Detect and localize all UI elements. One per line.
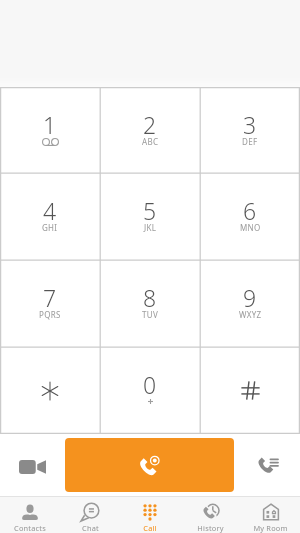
button[interactable]: History xyxy=(180,502,240,533)
button[interactable]: Video call xyxy=(0,434,65,496)
button[interactable]: Call xyxy=(120,502,180,533)
button[interactable] xyxy=(200,347,300,434)
button[interactable]: 7 xyxy=(0,260,100,347)
staticText: 9 xyxy=(243,282,257,313)
button[interactable] xyxy=(0,347,100,434)
button[interactable]: My Room xyxy=(240,502,300,533)
button[interactable]: 4 xyxy=(0,173,100,260)
button[interactable]: 5 xyxy=(100,173,200,260)
button[interactable]: Call xyxy=(65,438,234,492)
button[interactable]: 8 xyxy=(100,260,200,347)
staticText: GHI xyxy=(42,222,58,233)
staticText: Contacts xyxy=(14,523,46,533)
staticText: PQRS xyxy=(39,309,61,320)
staticText: ABC xyxy=(142,136,159,147)
staticText: 3 xyxy=(243,109,257,140)
staticText: DEF xyxy=(242,136,258,147)
button[interactable]: Chat xyxy=(60,502,120,533)
staticText: WXYZ xyxy=(239,309,262,320)
staticText: 4 xyxy=(43,195,57,226)
staticText: 2 xyxy=(143,109,157,140)
button[interactable]: Call history options xyxy=(234,434,300,496)
staticText: 1 xyxy=(43,109,57,140)
staticText: JKL xyxy=(144,222,157,233)
staticText: Chat xyxy=(82,523,99,533)
button[interactable]: 2 xyxy=(100,87,200,173)
staticText: 0 xyxy=(143,369,157,400)
staticText: 7 xyxy=(43,282,57,313)
staticText: MNO xyxy=(240,222,261,233)
button[interactable]: 1 xyxy=(0,87,100,173)
staticText: My Room xyxy=(253,523,288,533)
button[interactable]: 6 xyxy=(200,173,300,260)
button[interactable]: 3 xyxy=(200,87,300,173)
staticText: Call xyxy=(143,523,157,533)
button[interactable]: 9 xyxy=(200,260,300,347)
button[interactable]: Contacts xyxy=(0,502,60,533)
staticText: 5 xyxy=(143,195,157,226)
staticText: 6 xyxy=(243,195,257,226)
staticText: TUV xyxy=(142,309,158,320)
staticText: 8 xyxy=(143,282,157,313)
staticText: History xyxy=(197,523,224,533)
button[interactable]: 0 xyxy=(100,347,200,434)
